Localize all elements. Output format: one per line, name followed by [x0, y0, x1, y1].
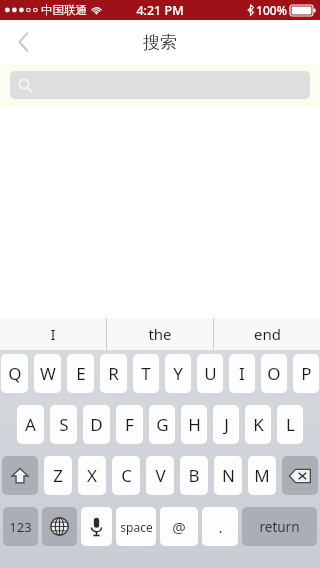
staticText: J — [224, 413, 229, 436]
staticText: E — [76, 362, 86, 385]
staticText: R — [108, 362, 119, 385]
button[interactable]: Back — [0, 20, 48, 64]
staticText: H — [188, 413, 201, 436]
button[interactable]: @ — [160, 507, 198, 546]
button[interactable]: I — [229, 354, 255, 393]
button[interactable]: C — [112, 456, 140, 495]
staticText: 100% — [256, 2, 287, 18]
staticText: end — [254, 324, 281, 344]
button[interactable]: Y — [165, 354, 191, 393]
button[interactable]: Backspace — [282, 456, 318, 495]
staticText: K — [253, 413, 264, 436]
staticText: S — [59, 413, 69, 436]
staticText: I — [239, 362, 245, 385]
staticText: L — [286, 413, 295, 436]
button[interactable]: 123 — [3, 507, 38, 546]
staticText: G — [156, 413, 169, 436]
staticText: 4:21 PM — [136, 2, 184, 19]
button[interactable]: X — [78, 456, 106, 495]
staticText: Q — [8, 362, 22, 385]
button[interactable]: Switch keyboard — [42, 507, 77, 546]
staticText: U — [204, 362, 217, 385]
staticText: Z — [53, 464, 63, 487]
button[interactable]: F — [116, 405, 143, 444]
button[interactable]: Q — [1, 354, 28, 393]
button[interactable]: B — [180, 456, 208, 495]
staticText: D — [90, 413, 103, 436]
staticText: 123 — [9, 518, 32, 536]
staticText: W — [40, 362, 56, 385]
button[interactable]: O — [261, 354, 287, 393]
staticText: I — [50, 324, 56, 344]
staticText: T — [141, 362, 151, 385]
button[interactable]: R — [100, 354, 127, 393]
staticText: @ — [172, 517, 186, 537]
staticText: 搜索 — [143, 32, 177, 53]
button[interactable]: J — [213, 405, 239, 444]
staticText: A — [25, 413, 36, 436]
staticText: V — [155, 464, 166, 487]
button[interactable]: M — [248, 456, 276, 495]
button[interactable]: end — [214, 318, 320, 350]
button[interactable]: L — [277, 405, 303, 444]
button[interactable]: I — [0, 318, 106, 350]
button[interactable]: S — [50, 405, 77, 444]
staticText: the — [148, 324, 172, 344]
button[interactable]: U — [197, 354, 223, 393]
button[interactable]: G — [149, 405, 175, 444]
staticText: return — [259, 518, 300, 536]
staticText: P — [301, 362, 312, 385]
button[interactable]: E — [67, 354, 94, 393]
staticText: 中国联通 — [41, 3, 87, 17]
staticText: X — [87, 464, 97, 487]
staticText: B — [188, 464, 200, 487]
staticText: space — [120, 519, 153, 535]
button[interactable]: Shift — [2, 456, 38, 495]
button[interactable]: K — [245, 405, 271, 444]
button[interactable]: Z — [44, 456, 72, 495]
button[interactable]: space — [116, 507, 156, 546]
staticText: Y — [173, 362, 183, 385]
button[interactable]: T — [133, 354, 159, 393]
staticText: . — [218, 517, 223, 537]
button[interactable]: N — [214, 456, 242, 495]
button[interactable]: P — [293, 354, 319, 393]
button[interactable]: . — [202, 507, 238, 546]
staticText: M — [254, 464, 270, 487]
button[interactable]: D — [83, 405, 110, 444]
staticText: N — [222, 464, 235, 487]
staticText: C — [121, 464, 132, 487]
staticText: F — [125, 413, 134, 436]
staticText: O — [267, 362, 281, 385]
button[interactable]: A — [17, 405, 44, 444]
button[interactable]: return — [242, 507, 317, 546]
button[interactable]: H — [181, 405, 207, 444]
button[interactable]: V — [146, 456, 174, 495]
button[interactable]: the — [107, 318, 213, 350]
button[interactable]: Dictate — [81, 507, 112, 546]
button[interactable]: W — [34, 354, 61, 393]
